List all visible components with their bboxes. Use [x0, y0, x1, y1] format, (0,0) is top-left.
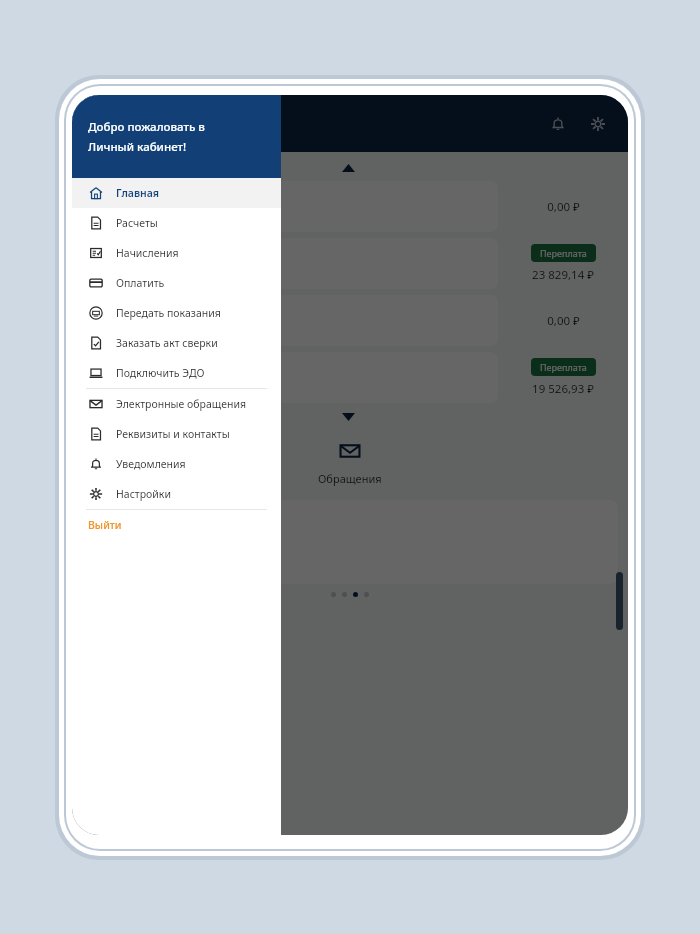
staticText: Реквизиты и контакты	[116, 427, 230, 441]
staticText: Уведомления	[116, 457, 186, 471]
staticText: 0,00 ₽	[547, 199, 580, 215]
button[interactable]: Настройки	[72, 479, 281, 509]
button[interactable]: Заказать акт сверки	[72, 328, 281, 358]
button[interactable]: Оплатить	[72, 268, 281, 298]
button[interactable]: Выйти	[72, 510, 281, 540]
staticText: Заказать акт сверки	[116, 336, 218, 350]
button[interactable]: Уведомления	[72, 449, 281, 479]
button[interactable]: Реквизиты и контакты	[72, 419, 281, 449]
button[interactable]	[82, 352, 498, 403]
button[interactable]: Электронные обращения	[72, 389, 281, 419]
button[interactable]	[82, 295, 498, 346]
button[interactable]: Настройки	[582, 108, 614, 140]
staticText: Подключить ЭДО	[116, 366, 205, 380]
button[interactable]: Расчеты	[72, 208, 281, 238]
staticText: Личный кабинет!	[88, 139, 187, 155]
staticText: 23 829,14 ₽	[532, 267, 594, 283]
staticText: Начисления	[116, 246, 179, 260]
staticText: Оплатить	[116, 276, 165, 290]
staticText: 19 526,93 ₽	[532, 381, 594, 397]
button[interactable]	[82, 181, 498, 232]
button[interactable]: Возможности личного кабинета	[82, 500, 618, 584]
button[interactable]: Начисления	[72, 238, 281, 268]
button[interactable]: Передать показания	[72, 298, 281, 328]
staticText: Выйти	[88, 518, 122, 532]
staticText: Добро пожаловать в	[88, 119, 205, 135]
staticText: Передать показания	[116, 306, 221, 320]
staticText: 0,00 ₽	[547, 313, 580, 329]
staticText: Электронные обращения	[116, 397, 247, 411]
staticText: Обращения	[318, 471, 382, 486]
button[interactable]: Уведомления	[542, 108, 574, 140]
button[interactable]	[82, 238, 498, 289]
button[interactable]: Оплатить	[80, 432, 260, 492]
button[interactable]: Обращения	[260, 432, 440, 492]
staticText: Главная	[116, 186, 160, 200]
staticText: Переплата	[540, 247, 587, 259]
button[interactable]: Подключить ЭДО	[72, 358, 281, 388]
staticText: Настройки	[116, 487, 171, 501]
staticText: Расчеты	[116, 216, 158, 230]
button[interactable]: Главная	[72, 178, 281, 208]
button[interactable]: Развернуть	[342, 413, 355, 421]
button[interactable]: Свернуть	[342, 164, 355, 172]
staticText: Переплата	[540, 361, 587, 373]
